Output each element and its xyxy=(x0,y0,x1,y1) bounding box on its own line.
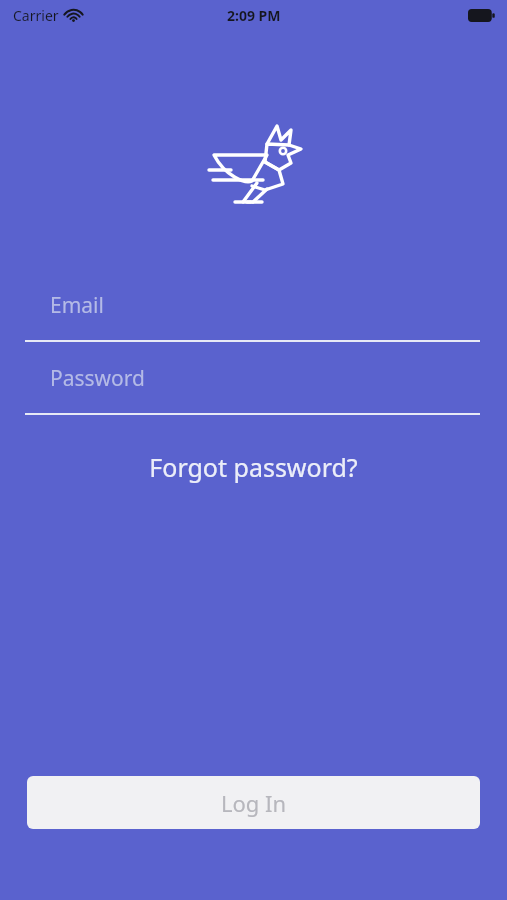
button[interactable]: Forgot password? xyxy=(0,441,507,493)
staticText: Carrier xyxy=(13,6,59,25)
other: Logo xyxy=(205,118,303,204)
button[interactable]: Password xyxy=(25,345,480,415)
staticText: Password xyxy=(50,364,145,393)
button[interactable]: Log In xyxy=(27,776,480,829)
staticText: Forgot password? xyxy=(149,450,358,484)
staticText: 2:09 PM xyxy=(227,6,281,25)
staticText: Email xyxy=(50,291,104,320)
button[interactable]: Email xyxy=(25,272,480,342)
staticText: Log In xyxy=(221,788,287,818)
